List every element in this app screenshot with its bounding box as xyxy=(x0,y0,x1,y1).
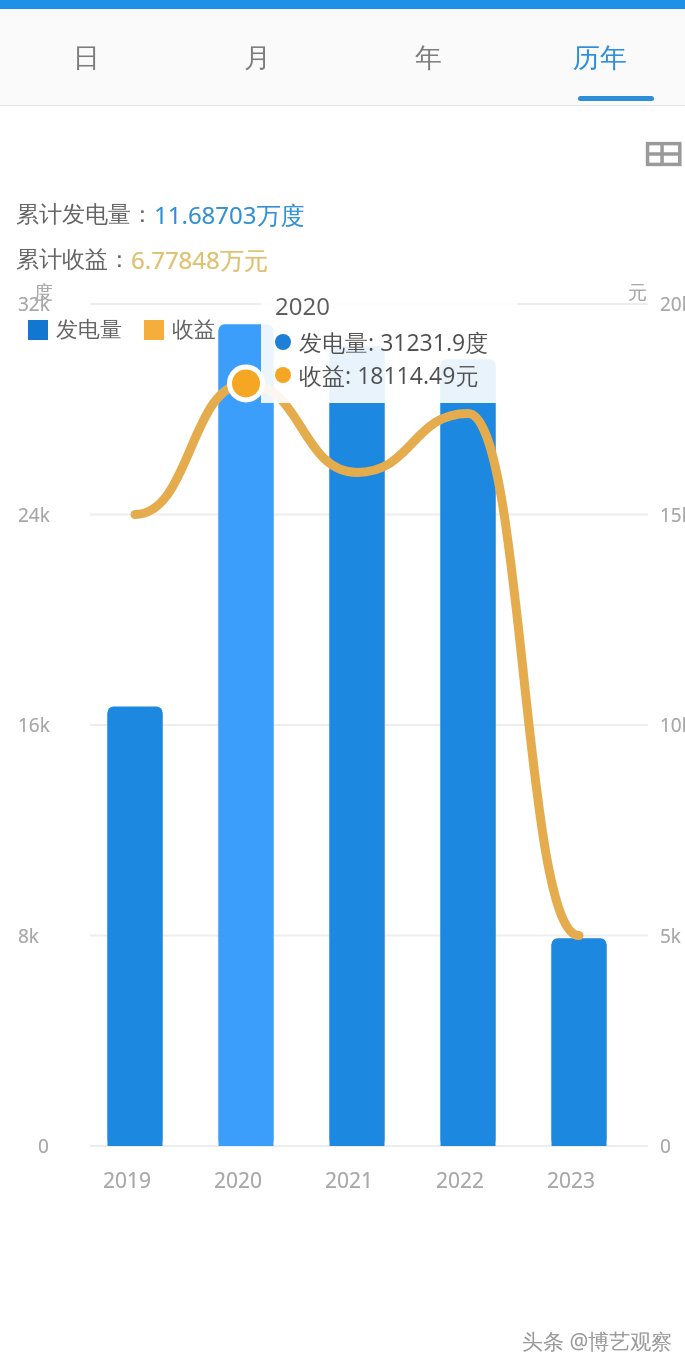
button[interactable]: 日 xyxy=(0,9,172,106)
staticText: 发电量 xyxy=(56,316,122,344)
staticText: 历年 xyxy=(573,41,627,75)
staticText: 年 xyxy=(415,41,442,75)
button[interactable]: 2020 xyxy=(261,281,518,403)
staticText: 32k xyxy=(18,291,50,317)
staticText: 度 xyxy=(34,281,53,305)
staticText: 5k xyxy=(660,923,682,949)
staticText: 2021 xyxy=(325,1166,374,1195)
staticText: 累计收益： xyxy=(16,245,131,274)
button[interactable]: Table view xyxy=(633,128,685,180)
staticText: 0 xyxy=(38,1133,49,1159)
staticText: 月 xyxy=(244,41,271,75)
staticText: 16k xyxy=(18,712,50,738)
staticText: 元 xyxy=(628,281,647,305)
staticText: 20k xyxy=(660,291,685,317)
staticText: 头条 @博艺观察 xyxy=(522,1327,673,1356)
staticText: 日 xyxy=(73,41,100,75)
staticText: 6.77848万元 xyxy=(131,243,268,276)
staticText: 0 xyxy=(660,1133,671,1159)
staticText: 2019 xyxy=(103,1166,152,1195)
staticText: 累计发电量： xyxy=(16,200,154,229)
staticText: 收益 xyxy=(172,316,216,344)
staticText: 收益: 18114.49元 xyxy=(299,359,479,390)
staticText: 8k xyxy=(18,923,40,949)
staticText: 24k xyxy=(18,502,50,528)
button[interactable]: 年 xyxy=(343,9,514,106)
staticText: 11.68703万度 xyxy=(154,198,305,231)
staticText: 2023 xyxy=(547,1166,596,1195)
button[interactable]: 历年 xyxy=(514,9,685,106)
staticText: 2020 xyxy=(214,1166,263,1195)
staticText: 15k xyxy=(660,502,685,528)
button[interactable]: 月 xyxy=(172,9,343,106)
staticText: 10k xyxy=(660,712,685,738)
staticText: 2020 xyxy=(275,289,330,322)
staticText: 发电量: 31231.9度 xyxy=(299,326,489,357)
staticText: 2022 xyxy=(436,1166,485,1195)
